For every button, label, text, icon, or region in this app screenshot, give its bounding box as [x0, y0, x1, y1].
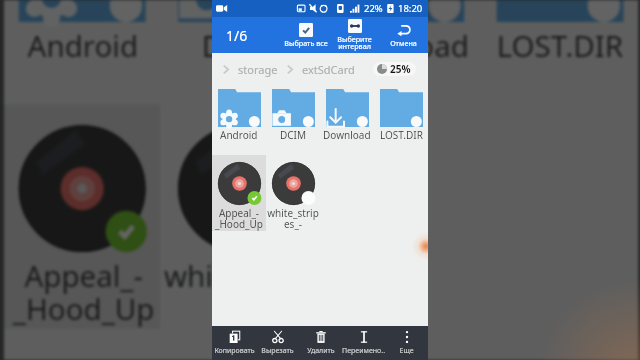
button[interactable]: Download — [320, 85, 374, 155]
button[interactable]: Download — [320, 0, 479, 104]
staticText: Appeal_- _Hood_Up — [13, 255, 154, 329]
button[interactable]: Выберите интервал — [330, 17, 379, 53]
staticText: Android — [220, 128, 258, 142]
button[interactable]: Вырезать — [256, 326, 299, 360]
staticText: Копировать — [214, 346, 255, 356]
button[interactable]: white_strip es_- — [160, 104, 320, 329]
button[interactable]: white_strip es_- — [266, 155, 320, 231]
staticText: LOST.DIR — [380, 128, 423, 142]
button[interactable]: Отмена — [379, 17, 428, 53]
button[interactable]: Android — [4, 0, 160, 104]
staticText: LOST.DIR — [497, 25, 623, 66]
staticText: white_strip es_- — [267, 206, 319, 231]
staticText: DCIM — [280, 128, 307, 142]
button[interactable]: Android — [212, 85, 266, 155]
button[interactable]: Переимено... — [342, 326, 385, 360]
staticText: 1/6 — [226, 26, 248, 45]
staticText: Переимено... — [342, 346, 385, 356]
button[interactable]: Выбрать все — [281, 17, 330, 53]
button[interactable]: Удалить — [299, 326, 342, 360]
staticText: Еще — [399, 346, 414, 356]
staticText: Appeal_- _Hood_Up — [215, 206, 263, 231]
button[interactable]: LOST.DIR — [479, 0, 638, 104]
staticText: Выберите интервал — [337, 34, 372, 51]
button[interactable]: Appeal_- _Hood_Up — [4, 104, 160, 329]
staticText: Android — [28, 25, 140, 66]
button[interactable]: Копировать — [212, 326, 256, 360]
staticText: extSdCard — [302, 62, 355, 77]
button[interactable]: Appeal_- _Hood_Up — [212, 155, 266, 231]
staticText: 18:20 — [398, 2, 423, 15]
staticText: 22% — [364, 2, 383, 15]
staticText: Вырезать — [261, 346, 294, 356]
button[interactable]: DCIM — [160, 0, 320, 104]
staticText: white_strip es_- — [163, 255, 317, 329]
staticText: storage — [238, 62, 278, 77]
staticText: Download — [328, 25, 470, 66]
button[interactable]: LOST.DIR — [374, 85, 428, 155]
button[interactable]: DCIM — [266, 85, 320, 155]
button[interactable]: 25% — [373, 62, 416, 76]
staticText: DCIM — [202, 25, 281, 66]
staticText: Download — [323, 128, 371, 142]
staticText: Отмена — [390, 38, 417, 48]
button[interactable]: Еще — [385, 326, 428, 360]
staticText: Удалить — [307, 346, 335, 356]
staticText: 25% — [390, 62, 411, 76]
staticText: Выбрать все — [284, 38, 328, 48]
